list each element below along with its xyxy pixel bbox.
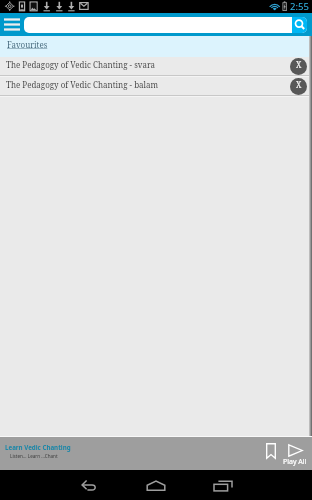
button[interactable]: Favourites [0,36,312,57]
button[interactable]: Remove from favourites [290,78,307,95]
staticText: X [296,59,302,70]
staticText: 2:55 [290,0,309,13]
button[interactable]: The Pedagogy of Vedic Chanting - svara [0,57,312,77]
button[interactable]: Home [142,470,170,500]
button[interactable]: Search [292,17,307,33]
button[interactable]: Learn Vedic Chanting [5,443,71,459]
button[interactable]: Recent apps [209,470,237,500]
button[interactable]: Remove from favourites [290,58,307,75]
button[interactable]: Open navigation menu [0,13,23,36]
button[interactable]: Bookmark [263,441,278,461]
button[interactable]: Back [76,470,104,500]
staticText: X [296,79,302,90]
staticText: The Pedagogy of Vedic Chanting - svara [6,59,156,70]
button[interactable]: Search [24,17,307,33]
button[interactable]: Play All [282,441,310,467]
staticText: The Pedagogy of Vedic Chanting - balam [6,79,159,90]
button[interactable]: The Pedagogy of Vedic Chanting - balam [0,77,312,97]
staticText: Favourites [7,39,48,50]
staticText: Learn Vedic Chanting [5,443,71,451]
staticText: Listen... Learn ...Chant [10,453,58,459]
staticText: Play All [283,457,307,467]
